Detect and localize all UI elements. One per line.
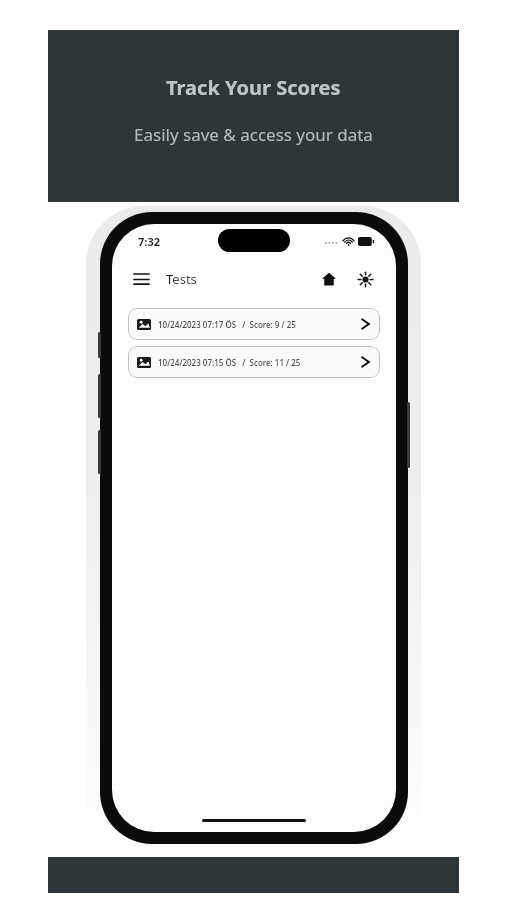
staticText: 10/24/2023 07:15 ÖS / Score: 11 / 25 [158,357,301,368]
button[interactable]: Open navigation menu [126,264,156,294]
button[interactable]: 10/24/2023 07:17 ÖS / Score: 9 / 25 [128,308,380,340]
staticText: Tests [166,270,197,288]
staticText: 7:32 [138,234,160,249]
button[interactable]: Toggle theme [350,264,380,294]
button[interactable]: Home [314,264,344,294]
staticText: Easily save & access your data [134,123,373,146]
button[interactable]: 10/24/2023 07:15 ÖS / Score: 11 / 25 [128,346,380,378]
staticText: Track Your Scores [166,74,341,101]
staticText: 10/24/2023 07:17 ÖS / Score: 9 / 25 [158,319,296,330]
